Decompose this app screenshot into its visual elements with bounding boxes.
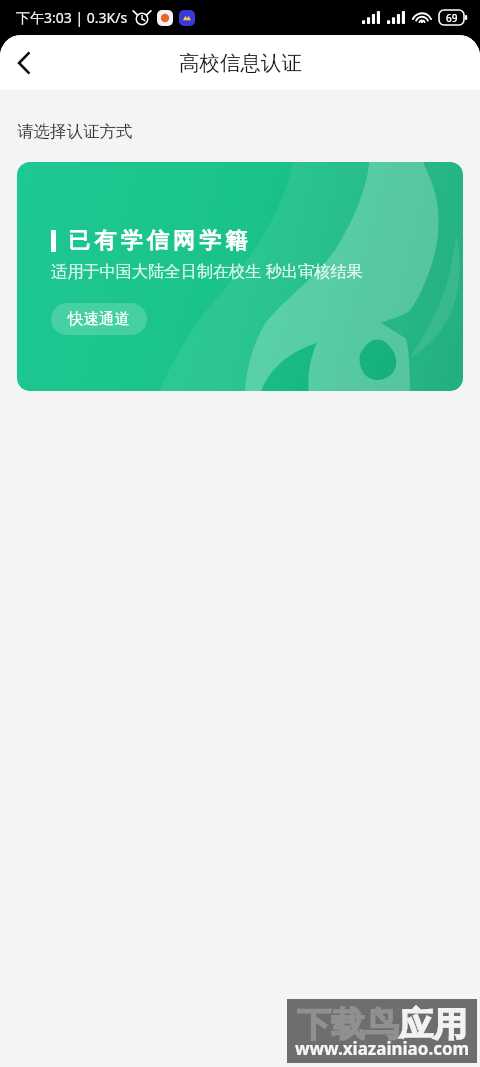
staticText: 下午3:03 | 0.3K/s [16, 8, 128, 27]
staticText: 69 [446, 11, 458, 25]
button[interactable]: Back [0, 39, 48, 87]
staticText: www.xiazainiao.com [295, 1037, 470, 1060]
staticText: 快速通道 [68, 309, 130, 329]
button[interactable]: 已有学信网学籍 [17, 162, 463, 391]
staticText: 高校信息认证 [179, 50, 302, 76]
staticText: 请选择认证方式 [17, 121, 133, 142]
staticText: 已有学信网学籍 [68, 227, 252, 255]
staticText: 下载鸟 [297, 1003, 399, 1046]
staticText: 应用 [399, 1003, 467, 1046]
button[interactable]: 快速通道 [51, 303, 147, 335]
staticText: 适用于中国大陆全日制在校生 秒出审核结果 [51, 260, 363, 282]
